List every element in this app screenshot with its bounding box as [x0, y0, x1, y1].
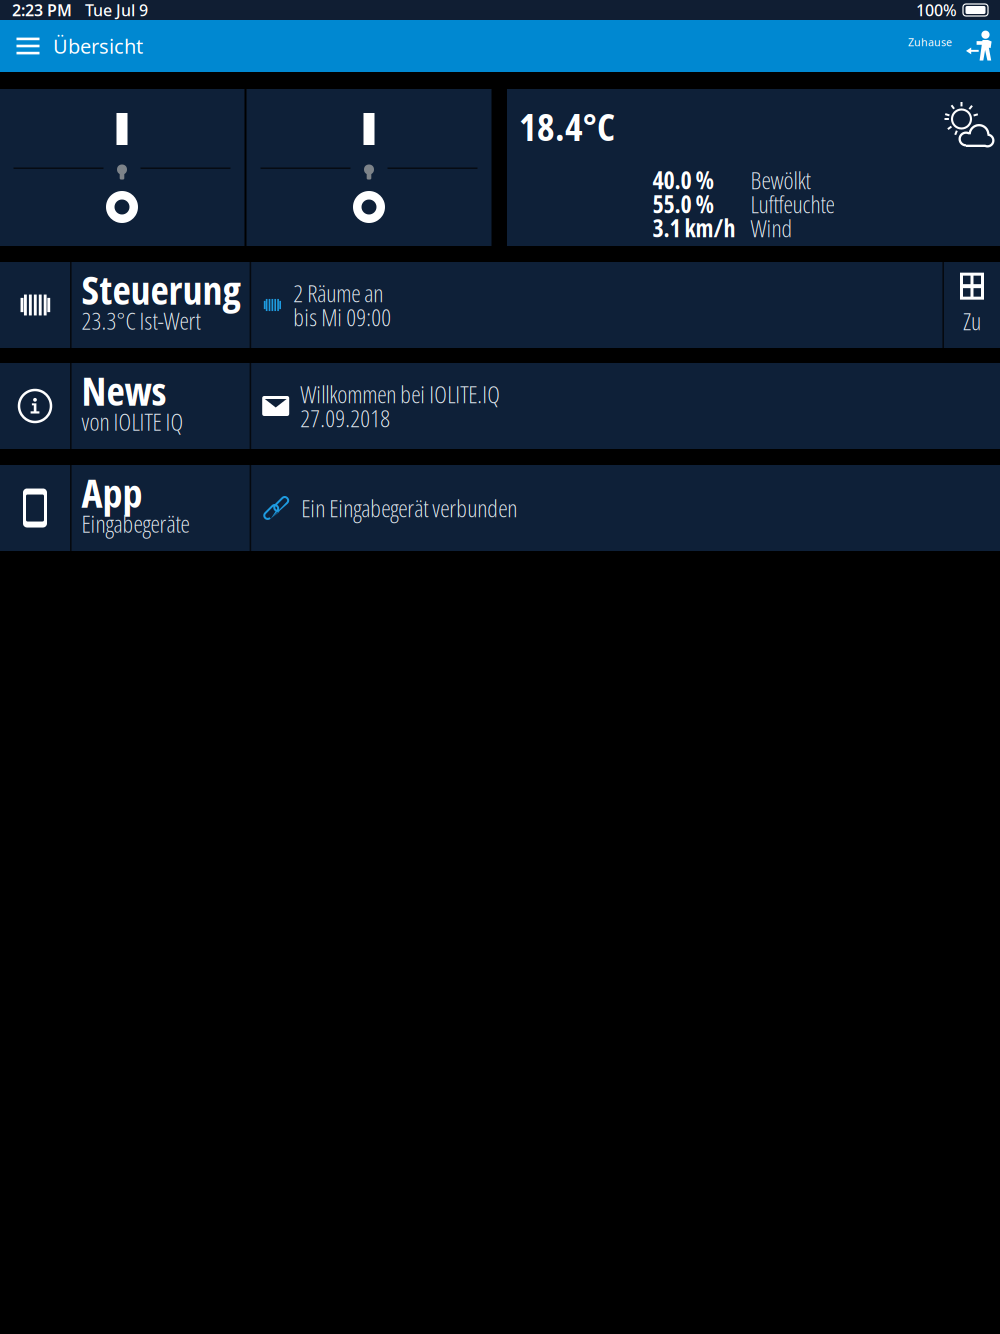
staticText: Ein Eingabegerät verbunden [301, 492, 517, 524]
staticText: App [82, 465, 143, 519]
staticText: Zu [963, 305, 981, 337]
button[interactable]: App [0, 465, 1000, 551]
staticText: Übersicht [53, 33, 143, 59]
staticText: News [82, 363, 167, 417]
button[interactable]: News [0, 363, 1000, 449]
button[interactable]: Zuhause [908, 20, 995, 72]
staticText: 2 Räume an [293, 277, 383, 309]
button[interactable] [246, 89, 491, 246]
staticText: Zuhause [908, 35, 952, 49]
staticText: 27.09.2018 [300, 402, 390, 434]
staticText: 23.3°C Ist-Wert [82, 304, 201, 337]
staticText: 55.0 % [652, 188, 714, 220]
staticText: 40.0 % [652, 164, 714, 196]
button[interactable]: Steuerung [0, 262, 1000, 348]
staticText: 3.1 km/h [652, 212, 735, 244]
staticText: bis Mi 09:00 [293, 301, 391, 333]
staticText: 18.4°C [519, 101, 615, 152]
staticText: Steuerung [82, 262, 241, 316]
staticText: Wind [750, 212, 792, 244]
staticText: 2:23 PM [12, 0, 72, 21]
staticText: von IOLITE IQ [82, 405, 184, 438]
staticText: Bewölkt [750, 164, 810, 196]
staticText: Eingabegeräte [82, 507, 190, 540]
button[interactable] [0, 89, 244, 246]
staticText: Tue Jul 9 [85, 0, 148, 21]
staticText: 100% [916, 0, 957, 21]
staticText: Willkommen bei IOLITE.IQ [300, 378, 500, 410]
button[interactable]: Menu [8, 20, 48, 72]
staticText: Luftfeuchte [750, 188, 834, 220]
